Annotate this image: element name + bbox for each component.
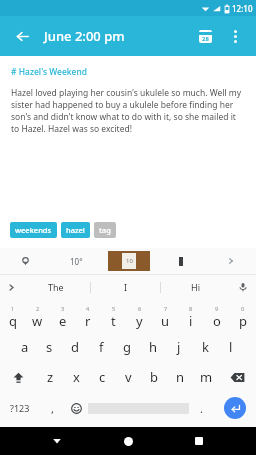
button[interactable]: I [91, 275, 160, 299]
staticText: q [9, 312, 17, 330]
staticText: 3 [61, 305, 65, 312]
button[interactable]: Comma [40, 392, 64, 424]
button[interactable]: hazel [61, 222, 90, 238]
staticText: Hi [191, 281, 200, 293]
staticText: g [123, 338, 131, 356]
button[interactable]: Period [189, 392, 213, 424]
staticText: weekends [15, 225, 52, 235]
staticText: n [176, 368, 185, 386]
staticText: . [200, 401, 203, 416]
staticText: z [47, 368, 54, 386]
staticText: e [59, 312, 67, 330]
staticText: s [46, 338, 53, 356]
button[interactable]: Shift [0, 362, 37, 392]
staticText: o [213, 312, 221, 330]
staticText: , [51, 401, 54, 416]
staticText: r [85, 312, 91, 330]
button[interactable]: Backspace [219, 362, 256, 392]
staticText: j [177, 338, 181, 356]
button[interactable]: n [167, 362, 193, 392]
button[interactable]: weekends [10, 222, 57, 238]
button[interactable]: s [37, 332, 62, 362]
button[interactable]: 3 [50, 302, 75, 332]
button[interactable]: j [166, 332, 192, 362]
staticText: p [239, 312, 247, 330]
staticText: k [202, 338, 209, 356]
button[interactable]: 7 [152, 302, 178, 332]
staticText: June 2:00 pm [44, 27, 125, 45]
staticText: 7 [164, 305, 168, 312]
staticText: y [136, 312, 143, 330]
button[interactable]: More options [220, 21, 250, 51]
staticText: 2 [36, 305, 40, 312]
button[interactable]: 2 [25, 302, 50, 332]
button[interactable]: a [12, 332, 37, 362]
button[interactable]: Sticker [156, 248, 206, 274]
button[interactable]: Home [114, 427, 142, 455]
button[interactable]: The [22, 275, 90, 299]
button[interactable]: g [114, 332, 140, 362]
staticText: hazel [66, 225, 85, 235]
button[interactable]: 6 [126, 302, 152, 332]
staticText: w [32, 312, 43, 330]
button[interactable]: Calendar [190, 21, 220, 51]
button[interactable]: 9 [204, 302, 230, 332]
staticText: ?123 [10, 402, 30, 414]
staticText: 12:10 [232, 3, 253, 14]
staticText: t [111, 312, 116, 330]
staticText: The [48, 281, 64, 293]
staticText: 0 [241, 305, 245, 312]
button[interactable]: m [193, 362, 219, 392]
button[interactable]: More suggestions [206, 248, 256, 274]
button[interactable]: Expand suggestions [0, 275, 22, 299]
button[interactable]: f [88, 332, 114, 362]
button[interactable]: Hide keyboard [43, 427, 71, 455]
button[interactable]: l [218, 332, 244, 362]
button[interactable]: 1 [0, 302, 25, 332]
staticText: # Hazel's Weekend [11, 66, 88, 78]
button[interactable]: Recents [185, 427, 213, 455]
staticText: 1 [11, 305, 15, 312]
button[interactable]: ?123 [0, 392, 40, 424]
staticText: 4 [86, 305, 90, 312]
staticText: 8 [189, 305, 193, 312]
button[interactable]: Voice input [230, 275, 256, 299]
staticText: 5 [112, 305, 116, 312]
button[interactable]: Location [0, 248, 51, 274]
staticText: h [149, 338, 158, 356]
button[interactable]: Hi [161, 275, 230, 299]
staticText: Hazel loved playing her cousin's ukulele… [11, 87, 245, 135]
button[interactable]: z [37, 362, 63, 392]
staticText: c [99, 368, 106, 386]
button[interactable]: k [192, 332, 218, 362]
button[interactable]: v [115, 362, 141, 392]
button[interactable]: tag [94, 222, 116, 238]
button[interactable]: 10° [51, 248, 101, 274]
button[interactable]: h [140, 332, 166, 362]
staticText: 28 [202, 35, 209, 43]
staticText: u [161, 312, 170, 330]
button[interactable]: Space [88, 400, 189, 416]
button[interactable]: 8 [178, 302, 204, 332]
staticText: x [73, 368, 80, 386]
staticText: m [200, 368, 213, 386]
button[interactable]: 0 [230, 302, 256, 332]
button[interactable]: Back [6, 20, 38, 52]
button[interactable]: Emoji [64, 392, 88, 424]
staticText: l [229, 338, 233, 356]
button[interactable]: 5 [100, 302, 126, 332]
staticText: i [189, 312, 193, 330]
button[interactable]: 4 [75, 302, 100, 332]
button[interactable]: d [62, 332, 88, 362]
staticText: I [124, 281, 128, 293]
staticText: f [99, 338, 104, 356]
button[interactable]: Enter [213, 392, 256, 424]
button[interactable]: c [89, 362, 115, 392]
staticText: 9 [215, 305, 219, 312]
button[interactable]: x [63, 362, 89, 392]
button[interactable]: b [141, 362, 167, 392]
staticText: b [150, 368, 158, 386]
staticText: v [125, 368, 132, 386]
button[interactable]: Image suggestion [101, 248, 156, 274]
staticText: 10° [70, 256, 83, 267]
